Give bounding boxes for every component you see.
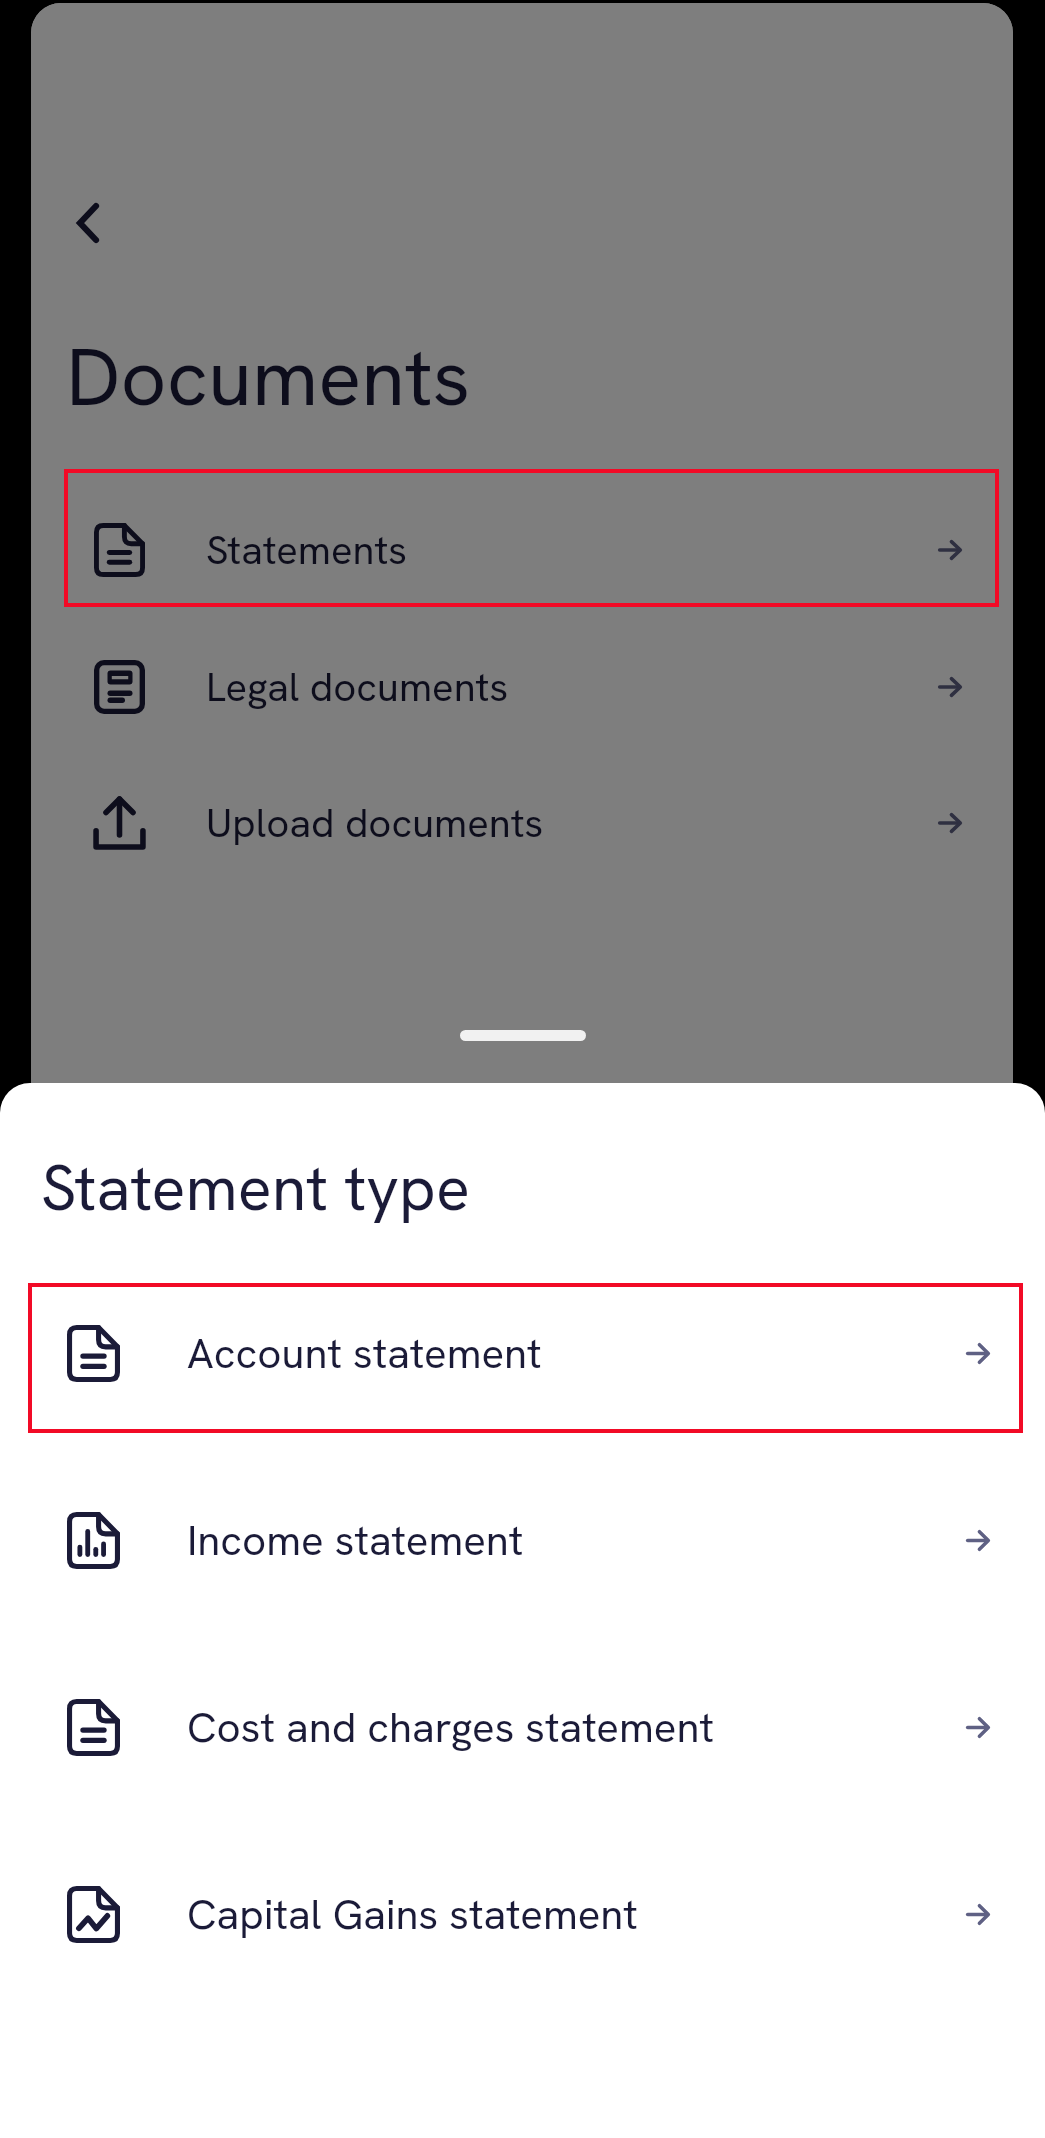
staticText: Documents xyxy=(66,325,471,429)
button[interactable]: Upload documents xyxy=(31,755,1013,891)
staticText: Capital Gains statement xyxy=(187,1887,638,1942)
staticText: Statements xyxy=(206,524,408,576)
staticText: Statement type xyxy=(41,1147,471,1229)
button[interactable]: Legal documents xyxy=(31,619,1013,755)
staticText: Account statement xyxy=(187,1326,542,1381)
staticText: Upload documents xyxy=(206,797,544,849)
button[interactable]: Capital Gains statement xyxy=(0,1839,1045,1989)
staticText: Cost and charges statement xyxy=(187,1700,715,1755)
button[interactable]: Back xyxy=(42,177,134,269)
button[interactable]: Cost and charges statement xyxy=(0,1652,1045,1802)
staticText: Legal documents xyxy=(206,661,509,713)
staticText: Income statement xyxy=(187,1513,524,1568)
button[interactable]: Statements xyxy=(31,482,1013,618)
button[interactable]: Income statement xyxy=(0,1465,1045,1615)
button[interactable]: Account statement xyxy=(0,1278,1045,1428)
